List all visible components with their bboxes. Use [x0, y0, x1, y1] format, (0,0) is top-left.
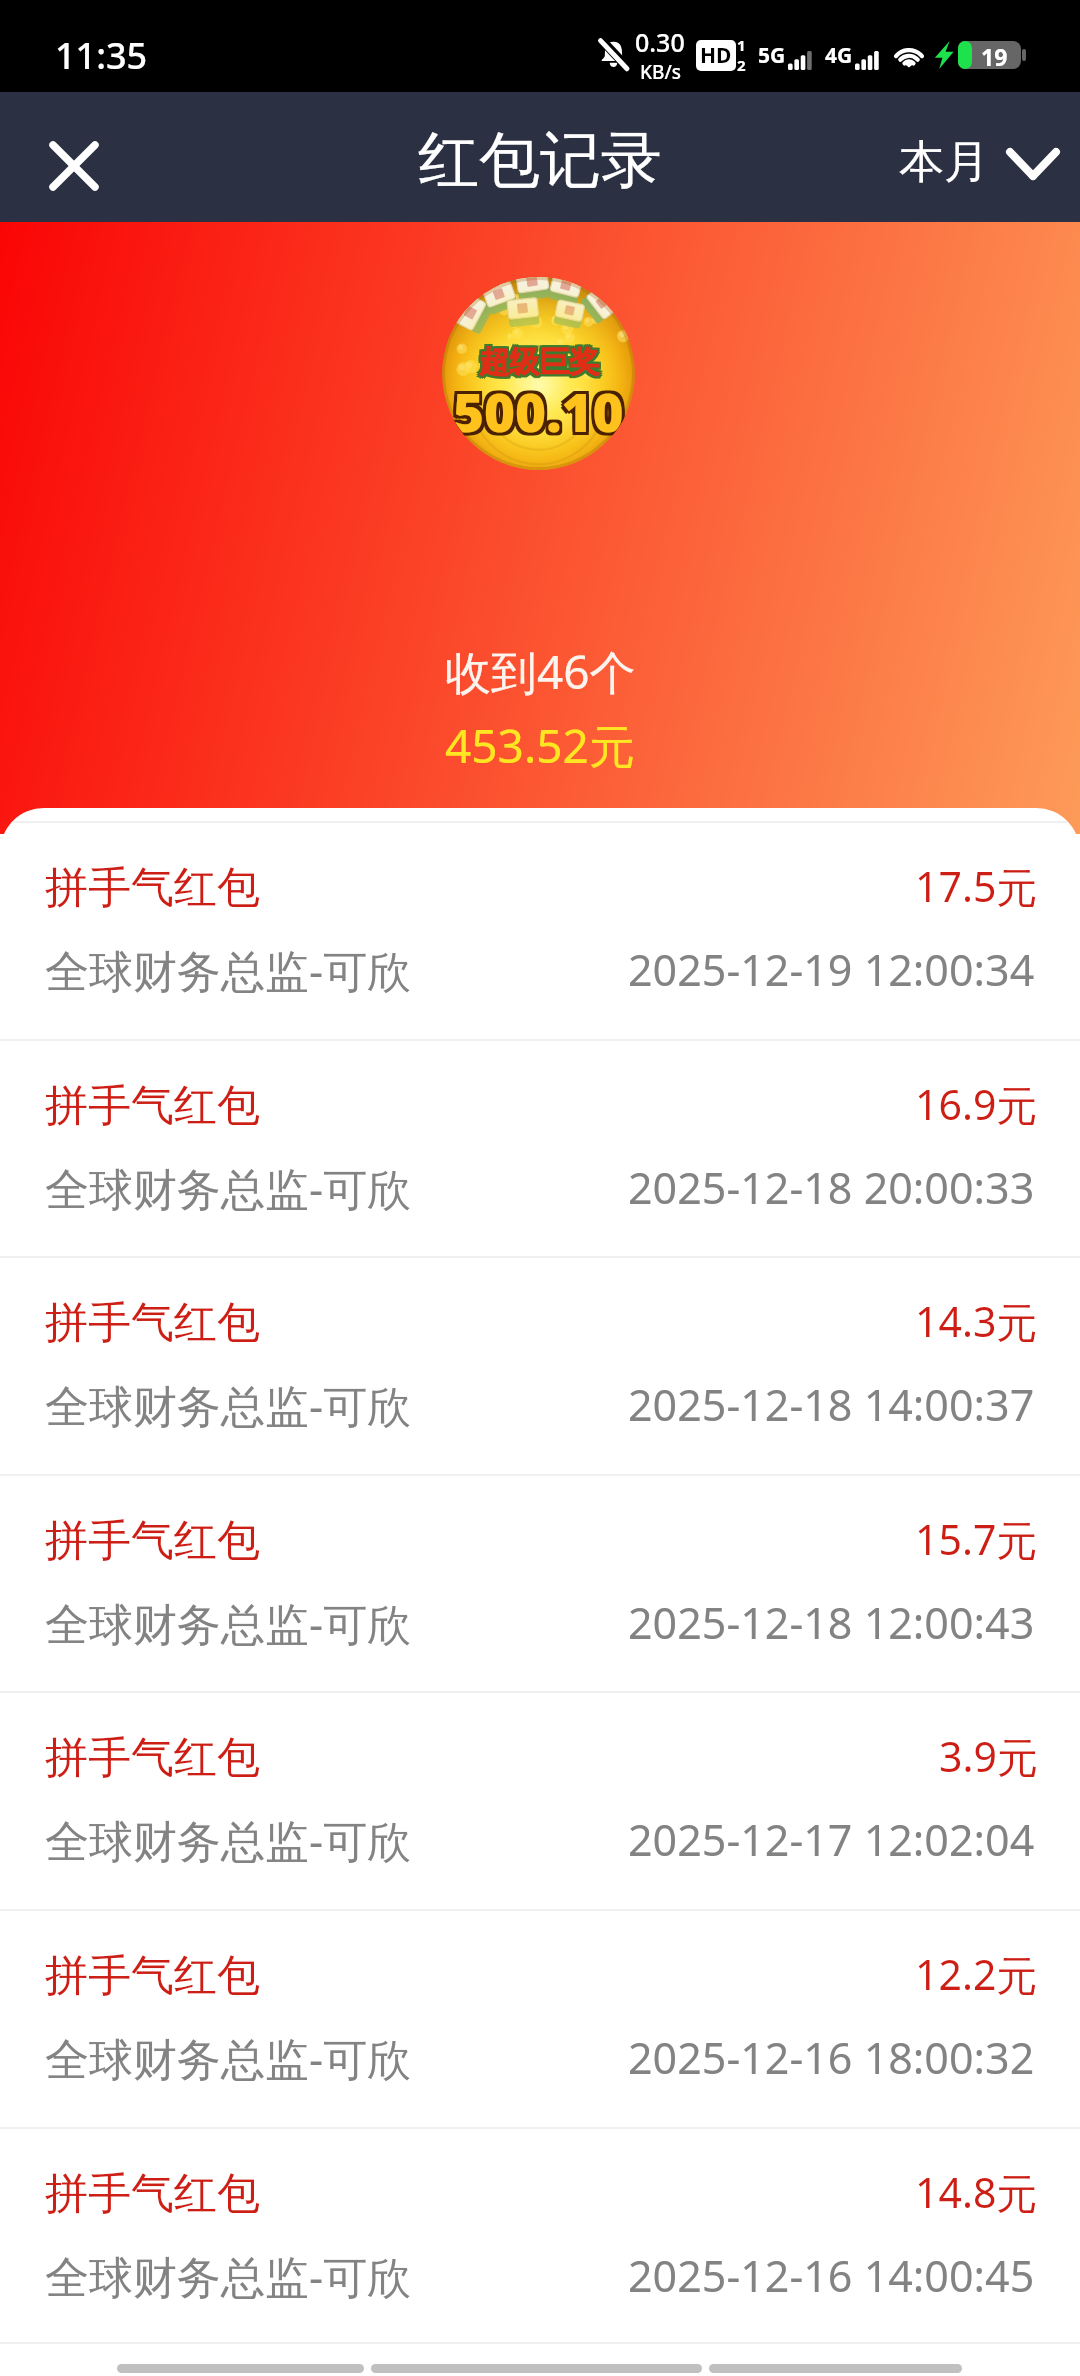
staticText: 500.10	[450, 372, 621, 444]
staticText: 11:35	[55, 31, 148, 80]
staticText: 全球财务总监-可欣	[45, 1375, 412, 1435]
staticText: 3.9元	[939, 1728, 1038, 1784]
button[interactable]: 拼手气红包	[0, 1476, 1080, 1693]
staticText: 17.5元	[915, 858, 1038, 914]
staticText: 拼手气红包	[45, 1949, 260, 2003]
staticText: 全球财务总监-可欣	[45, 1810, 412, 1870]
staticText: 拼手气红包	[45, 1514, 260, 1568]
staticText: 14.3元	[915, 1293, 1038, 1349]
staticText: 超级巨奖	[477, 345, 597, 383]
staticText: 2025-12-17 12:02:04	[628, 1810, 1035, 1869]
staticText: 超级巨奖	[477, 343, 597, 381]
button[interactable]: 拼手气红包	[0, 1693, 1080, 1911]
staticText: 拼手气红包	[45, 2167, 260, 2221]
staticText: 全球财务总监-可欣	[45, 1593, 412, 1653]
staticText: 超级巨奖	[477, 341, 597, 379]
staticText: 拼手气红包	[45, 1731, 260, 1785]
staticText: 2025-12-18 12:00:43	[628, 1593, 1035, 1652]
button[interactable]: 拼手气红包	[0, 2129, 1080, 2347]
staticText: 0.30	[635, 25, 685, 59]
button[interactable]: 拼手气红包	[0, 1258, 1080, 1476]
staticText: 500.10	[453, 372, 624, 444]
staticText: 2025-12-19 12:00:34	[628, 940, 1035, 999]
staticText: 500.10	[453, 375, 624, 447]
staticText: 全球财务总监-可欣	[45, 1158, 412, 1218]
staticText: 19	[981, 41, 1008, 69]
staticText: 5G	[758, 41, 786, 70]
staticText: 2025-12-18 20:00:33	[628, 1158, 1035, 1217]
button[interactable]: Close	[30, 122, 118, 210]
staticText: HD	[700, 41, 732, 70]
staticText: 拼手气红包	[45, 1079, 260, 1133]
staticText: 全球财务总监-可欣	[45, 2246, 412, 2306]
staticText: 超级巨奖	[479, 343, 599, 381]
staticText: 拼手气红包	[45, 1296, 260, 1350]
staticText: 453.52元	[445, 714, 635, 777]
staticText: 超级巨奖	[481, 345, 601, 383]
staticText: 超级巨奖	[481, 343, 601, 381]
staticText: 2025-12-18 14:00:37	[628, 1375, 1035, 1434]
staticText: 拼手气红包	[45, 861, 260, 915]
button[interactable]: 拼手气红包	[0, 1041, 1080, 1258]
button[interactable]: 本月	[887, 114, 1080, 211]
staticText: 1	[737, 35, 746, 55]
staticText: 4G	[825, 41, 853, 70]
staticText: 500.10	[450, 378, 621, 450]
staticText: 15.7元	[915, 1511, 1038, 1567]
staticText: 超级巨奖	[479, 345, 599, 383]
staticText: 收到46个	[445, 640, 636, 703]
staticText: 2025-12-16 18:00:32	[628, 2028, 1035, 2087]
staticText: 本月	[899, 134, 989, 191]
staticText: 全球财务总监-可欣	[45, 2028, 412, 2088]
staticText: 2025-12-16 14:00:45	[628, 2246, 1035, 2305]
staticText: 12.2元	[915, 1946, 1038, 2002]
other: 超级巨奖 500.10	[442, 277, 635, 470]
staticText: 超级巨奖	[479, 341, 599, 379]
staticText: 全球财务总监-可欣	[45, 940, 412, 1000]
staticText: 14.8元	[915, 2164, 1038, 2220]
button[interactable]: 拼手气红包	[0, 823, 1080, 1041]
staticText: 500.10	[453, 378, 624, 450]
staticText: 红包记录	[418, 122, 662, 199]
staticText: KB/s	[640, 59, 681, 85]
staticText: 2	[737, 55, 746, 75]
staticText: 500.10	[456, 375, 627, 447]
button[interactable]: 拼手气红包	[0, 1911, 1080, 2129]
staticText: 超级巨奖	[481, 341, 601, 379]
staticText: 500.10	[450, 375, 621, 447]
staticText: 16.9元	[915, 1076, 1038, 1132]
staticText: 500.10	[456, 372, 627, 444]
staticText: 500.10	[456, 378, 627, 450]
